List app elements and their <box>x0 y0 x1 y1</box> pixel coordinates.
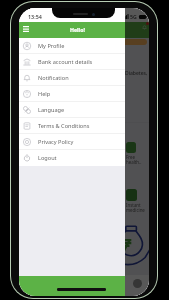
staticText: Instant medicine <box>126 202 145 213</box>
button[interactable]: Help <box>19 86 125 102</box>
staticText: Bank account details <box>38 58 93 66</box>
button[interactable]: Open navigation menu <box>19 22 32 36</box>
staticText: Logout <box>38 154 57 162</box>
button[interactable]: Logout <box>19 150 125 166</box>
button[interactable]: Language <box>19 102 125 118</box>
staticText: 5G <box>130 13 137 20</box>
staticText: Language <box>38 106 65 114</box>
staticText: Hello! <box>70 26 85 33</box>
staticText: Notification <box>38 74 69 82</box>
button[interactable]: Terms & Conditions <box>19 118 125 134</box>
button[interactable]: Privacy Policy <box>19 134 125 150</box>
button[interactable]: My Profile <box>19 38 125 54</box>
staticText: 13:54 <box>28 13 42 20</box>
staticText: Terms & Conditions <box>38 122 90 130</box>
staticText: Help <box>38 90 51 98</box>
staticText: My Profile <box>38 42 65 50</box>
staticText: Free health.. <box>126 154 142 165</box>
button[interactable]: Notification <box>19 70 125 86</box>
staticText: Diabetes, Heart Disease <box>125 70 149 77</box>
staticText: Privacy Policy <box>38 138 74 146</box>
button[interactable]: Bank account details <box>19 54 125 70</box>
